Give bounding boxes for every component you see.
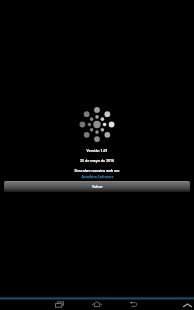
- button[interactable]: Show notifications: [183, 303, 192, 308]
- button[interactable]: Home: [82, 300, 111, 309]
- button[interactable]: Back: [119, 300, 148, 309]
- button[interactable]: Recents: [45, 300, 74, 309]
- staticText: Versión 1.01: [86, 148, 108, 153]
- staticText: 25 de mayo de 2016: [80, 158, 114, 163]
- staticText: Volver: [92, 184, 103, 189]
- staticText: Descubre nuestra web en:: [74, 168, 120, 173]
- button[interactable]: Artxibira Software: [81, 174, 114, 179]
- button[interactable]: Volver: [4, 181, 190, 192]
